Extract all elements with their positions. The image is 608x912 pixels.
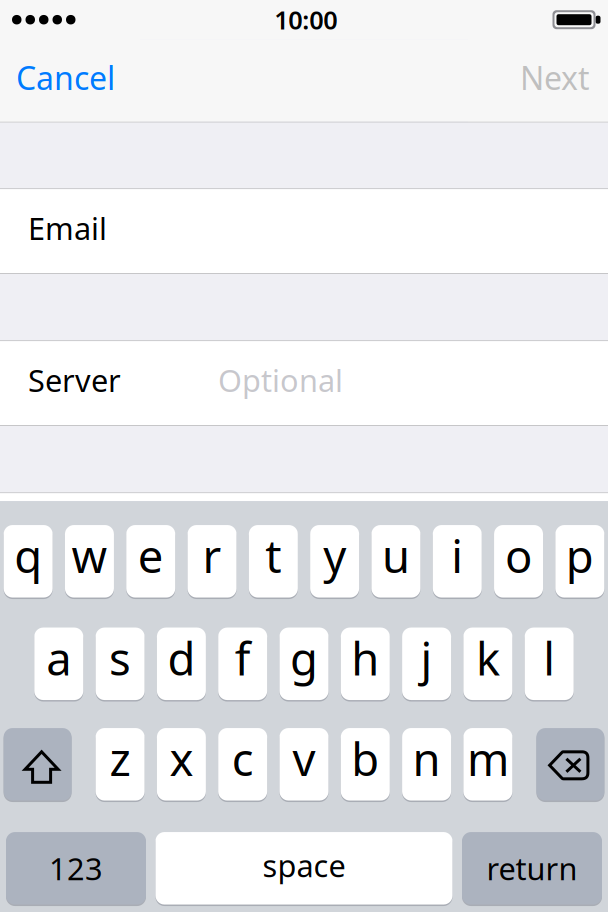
button[interactable]: y — [310, 525, 359, 597]
staticText: 10:00 — [274, 3, 337, 36]
button[interactable]: r — [187, 525, 236, 597]
staticText: c — [232, 728, 254, 788]
staticText: q — [14, 525, 42, 585]
button[interactable]: f — [218, 627, 267, 700]
button[interactable]: a — [34, 627, 83, 700]
staticText: Cancel — [16, 56, 115, 99]
button[interactable]: k — [463, 627, 512, 700]
button[interactable]: 123 — [6, 832, 146, 904]
button[interactable]: b — [341, 728, 390, 800]
button[interactable]: e — [126, 525, 175, 597]
staticText: u — [382, 525, 410, 585]
staticText: space — [262, 845, 345, 886]
button[interactable]: w — [65, 525, 114, 597]
staticText: p — [566, 525, 594, 585]
staticText: b — [351, 728, 379, 788]
staticText: n — [413, 728, 441, 788]
staticText: m — [467, 728, 509, 788]
button[interactable]: i — [433, 525, 482, 597]
button[interactable]: v — [279, 728, 328, 800]
button[interactable]: z — [96, 728, 145, 800]
staticText: return — [486, 848, 577, 889]
button[interactable]: u — [371, 525, 420, 597]
staticText: i — [451, 525, 463, 585]
staticText: f — [235, 628, 251, 688]
button[interactable]: t — [249, 525, 298, 597]
button[interactable]: x — [157, 728, 206, 800]
button[interactable]: Delete — [536, 728, 604, 800]
button[interactable]: Email — [0, 189, 608, 273]
staticText: Next — [520, 56, 590, 99]
staticText: x — [169, 728, 193, 788]
staticText: 123 — [49, 848, 103, 889]
button[interactable]: p — [555, 525, 604, 597]
button[interactable]: c — [218, 728, 267, 800]
staticText: k — [476, 628, 500, 688]
button[interactable]: s — [96, 627, 145, 700]
button[interactable]: l — [525, 627, 574, 700]
staticText: r — [202, 525, 221, 585]
button[interactable]: space — [155, 832, 452, 904]
staticText: Email — [28, 208, 107, 248]
button[interactable]: n — [402, 728, 451, 800]
staticText: Optional — [218, 360, 343, 400]
staticText: l — [543, 628, 555, 688]
button[interactable]: m — [463, 728, 512, 800]
button[interactable]: Server — [0, 341, 608, 425]
staticText: h — [351, 628, 379, 688]
staticText: v — [292, 728, 315, 788]
button[interactable]: h — [341, 627, 390, 700]
button[interactable]: d — [157, 627, 206, 700]
staticText: y — [323, 525, 346, 585]
staticText: z — [110, 728, 131, 788]
button[interactable]: Next — [468, 39, 608, 123]
staticText: s — [109, 628, 131, 688]
button[interactable]: j — [402, 627, 451, 700]
button[interactable]: return — [462, 832, 602, 904]
button[interactable]: g — [279, 627, 328, 700]
staticText: a — [46, 628, 71, 688]
staticText: t — [265, 525, 281, 585]
staticText: e — [138, 525, 164, 585]
staticText: o — [505, 525, 532, 585]
button[interactable]: Cancel — [0, 39, 140, 123]
button[interactable]: q — [4, 525, 53, 597]
staticText: w — [71, 525, 107, 585]
button[interactable]: o — [494, 525, 543, 597]
staticText: j — [421, 628, 433, 688]
staticText: g — [290, 628, 318, 688]
button[interactable]: Shift — [4, 728, 72, 800]
staticText: d — [167, 628, 195, 688]
staticText: Server — [28, 360, 121, 400]
